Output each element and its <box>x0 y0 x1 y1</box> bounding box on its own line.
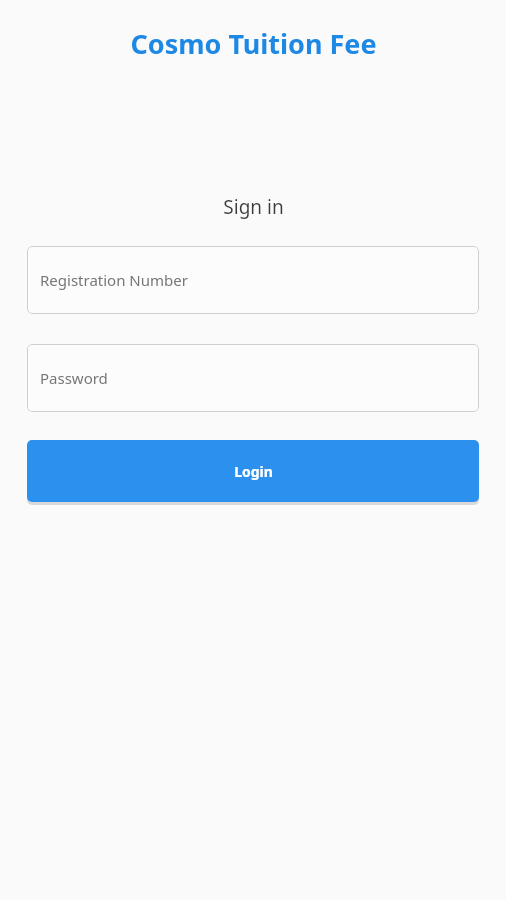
staticText: Registration Number <box>40 270 188 290</box>
staticText: Cosmo Tuition Fee <box>130 25 377 62</box>
staticText: Password <box>40 368 108 388</box>
staticText: Login <box>234 462 273 481</box>
button[interactable]: Registration Number <box>27 246 479 314</box>
button[interactable]: Login <box>27 440 479 502</box>
button[interactable]: Password <box>27 344 479 412</box>
staticText: Sign in <box>223 194 284 220</box>
